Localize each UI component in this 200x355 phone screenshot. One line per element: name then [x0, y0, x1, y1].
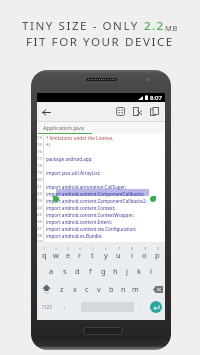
staticText: package android.app;: [46, 156, 93, 162]
staticText: FIT FOR YOUR DEVICE: [26, 34, 174, 50]
button[interactable]: ,: [59, 298, 70, 316]
staticText: 14: [37, 135, 42, 141]
staticText: x: [73, 284, 77, 294]
staticText: s: [63, 266, 67, 276]
staticText: c: [85, 284, 89, 294]
staticText: import android.annotation.CallSuper;: [46, 184, 127, 190]
staticText: q: [42, 250, 47, 260]
button[interactable]: 3: [62, 244, 74, 262]
staticText: 23: [37, 198, 42, 204]
button[interactable]: l: [145, 262, 157, 280]
staticText: 25: [37, 212, 42, 218]
staticText: 0: [157, 246, 159, 251]
button[interactable]: Copy: [146, 103, 163, 120]
staticText: 15: [37, 142, 42, 148]
button[interactable]: a: [45, 262, 58, 280]
button[interactable]: Layout: [112, 103, 129, 120]
staticText: k: [137, 266, 142, 276]
staticText: ?123: [42, 304, 52, 310]
staticText: t: [91, 250, 94, 260]
staticText: a: [49, 266, 54, 276]
button[interactable]: Shift: [38, 280, 55, 298]
staticText: 2.2: [144, 18, 165, 34]
staticText: 9: [144, 246, 146, 251]
staticText: v: [97, 284, 101, 294]
button[interactable]: 7: [112, 244, 125, 262]
button[interactable]: j: [121, 262, 133, 280]
button[interactable]: Run: [129, 103, 146, 120]
button[interactable]: 2: [50, 244, 62, 262]
button[interactable]: s: [58, 262, 71, 280]
staticText: import android.content.ContextWrapper;: [46, 212, 135, 218]
button[interactable]: 0: [151, 244, 164, 262]
staticText: 3: [67, 246, 69, 251]
staticText: 8: [131, 246, 133, 251]
staticText: n: [121, 284, 126, 294]
button[interactable]: .: [136, 298, 147, 316]
button[interactable]: g: [97, 262, 109, 280]
staticText: 8:07: [150, 94, 162, 102]
staticText: g: [101, 266, 106, 276]
staticText: 2: [55, 246, 57, 251]
staticText: 16: [37, 149, 42, 155]
staticText: m: [132, 284, 139, 294]
staticText: e: [66, 250, 71, 260]
staticText: o: [142, 250, 147, 260]
staticText: l: [150, 266, 152, 276]
staticText: w: [53, 250, 59, 260]
staticText: import android.content.res.Configuration…: [46, 226, 137, 232]
staticText: b: [109, 284, 114, 294]
staticText: import android.content.Intent;: [46, 219, 113, 225]
button[interactable]: n: [117, 280, 129, 298]
staticText: h: [113, 266, 118, 276]
staticText: 7: [118, 246, 120, 251]
staticText: 18: [37, 163, 42, 169]
button[interactable]: b: [105, 280, 117, 298]
staticText: 28: [37, 233, 42, 239]
staticText: MB: [165, 23, 179, 33]
button[interactable]: z: [55, 280, 68, 298]
button[interactable]: 9: [138, 244, 151, 262]
button[interactable]: h: [109, 262, 121, 280]
staticText: d: [75, 266, 80, 276]
staticText: 22: [37, 191, 42, 197]
staticText: TINY SIZE - ONLY: [22, 18, 144, 34]
button[interactable]: 1: [38, 244, 50, 262]
button[interactable]: f: [84, 262, 97, 280]
staticText: .: [141, 303, 143, 311]
staticText: y: [104, 250, 108, 260]
button[interactable]: m: [129, 280, 141, 298]
staticText: 29: [37, 239, 42, 242]
staticText: ,: [64, 303, 66, 311]
staticText: z: [60, 284, 64, 294]
button[interactable]: k: [133, 262, 145, 280]
staticText: 21: [37, 184, 42, 190]
staticText: 27: [37, 226, 42, 232]
button[interactable]: 8: [125, 244, 138, 262]
button[interactable]: x: [68, 280, 81, 298]
button[interactable]: 5: [86, 244, 99, 262]
staticText: i: [131, 250, 133, 260]
staticText: 6: [105, 246, 107, 251]
staticText: import android.os.Bundle;: [46, 233, 103, 239]
button[interactable]: c: [81, 280, 93, 298]
staticText: 1: [43, 246, 45, 251]
button[interactable]: ?123: [39, 298, 55, 316]
staticText: 4: [79, 246, 81, 251]
button[interactable]: 6: [99, 244, 112, 262]
staticText: 26: [37, 219, 42, 225]
staticText: 24: [37, 205, 42, 211]
staticText: import android.content.ComponentCallback…: [46, 198, 147, 204]
button[interactable]: Backspace: [149, 280, 166, 298]
staticText: 19: [37, 170, 42, 176]
staticText: 17: [37, 156, 42, 162]
staticText: */: [46, 142, 51, 148]
button[interactable]: Enter: [150, 301, 162, 313]
button[interactable]: 4: [74, 244, 86, 262]
staticText: r: [78, 250, 82, 260]
button[interactable]: Application.java: [43, 124, 84, 131]
button[interactable]: d: [71, 262, 84, 280]
button[interactable]: Back: [37, 103, 55, 121]
button[interactable]: v: [93, 280, 105, 298]
